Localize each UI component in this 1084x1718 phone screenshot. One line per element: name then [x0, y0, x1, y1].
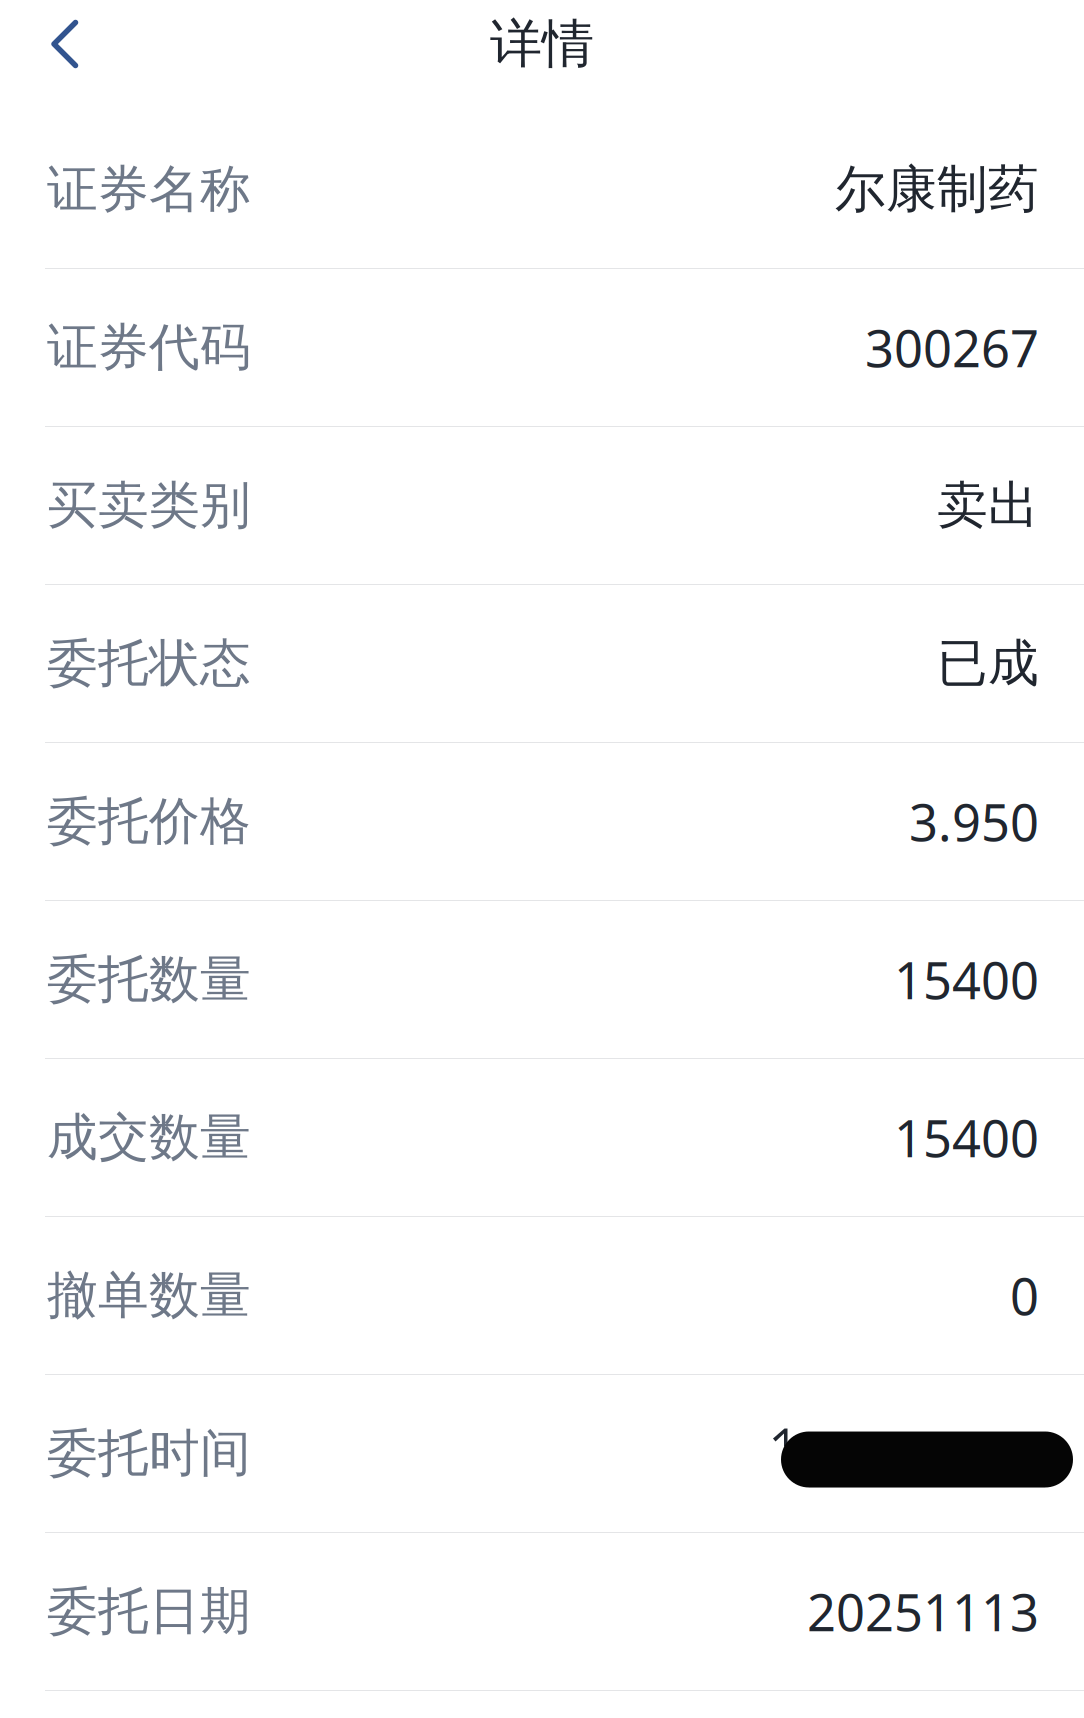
staticText: 300267	[865, 314, 1039, 381]
staticText: 委托价格	[47, 790, 251, 853]
staticText: 证券名称	[47, 158, 251, 221]
staticText: 详情	[490, 12, 594, 76]
staticText: 15400	[894, 1104, 1039, 1171]
staticText: 0	[1010, 1262, 1039, 1329]
staticText: 3.950	[909, 788, 1039, 855]
staticText: 成交数量	[47, 1106, 251, 1169]
button[interactable]: 返回	[0, 0, 100, 88]
staticText: 委托状态	[47, 632, 251, 695]
staticText: 买卖类别	[47, 474, 251, 537]
staticText: 证券代码	[47, 316, 251, 379]
staticText: 撤单数量	[47, 1264, 251, 1327]
staticText: 委托时间	[47, 1422, 251, 1485]
staticText: 委托日期	[47, 1580, 251, 1643]
staticText: 尔康制药	[835, 158, 1039, 221]
staticText: 20251113	[807, 1578, 1039, 1645]
staticText: 委托数量	[47, 948, 251, 1011]
staticText: 卖出	[937, 474, 1039, 537]
staticText: 已成	[937, 632, 1039, 695]
staticText: 15400	[894, 946, 1039, 1013]
